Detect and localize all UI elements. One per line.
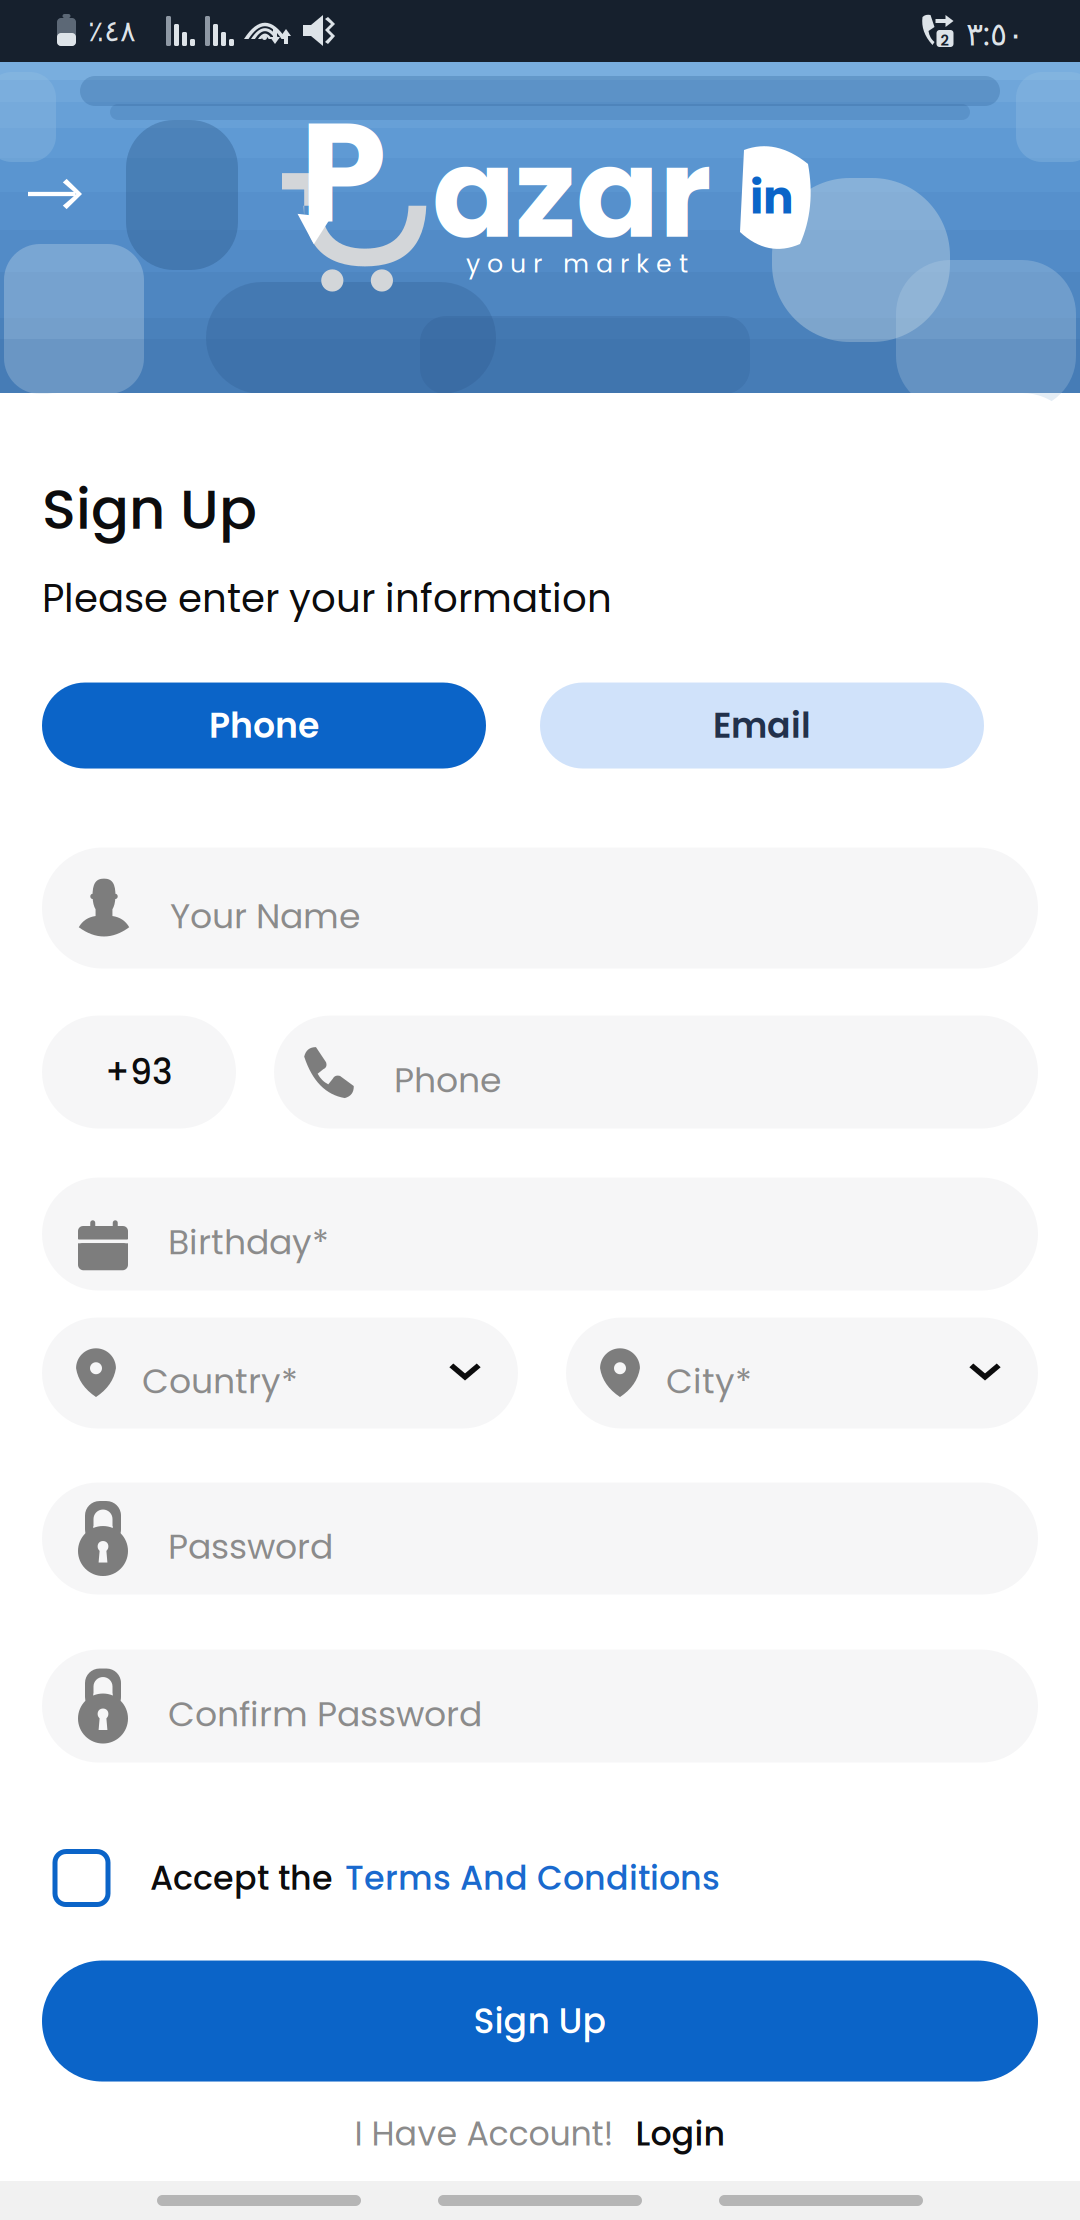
staticText: ٣:٥٠	[966, 12, 1024, 57]
button[interactable]: Accept the terms and conditions	[55, 1851, 108, 1904]
staticText: +93	[105, 1048, 173, 1096]
staticText: Country*	[142, 1357, 298, 1405]
button[interactable]: Terms And Conditions	[345, 1855, 720, 1901]
button[interactable]: Sign Up	[42, 1960, 1038, 2081]
button[interactable]: Email	[540, 682, 984, 768]
staticText: in	[750, 166, 794, 229]
staticText: Password	[168, 1522, 333, 1571]
staticText: azar	[432, 108, 712, 280]
staticText: Your Name	[170, 892, 360, 940]
staticText: 2	[940, 30, 948, 50]
staticText: Phone	[209, 701, 319, 750]
staticText: y o u r m a r k e t	[466, 246, 688, 281]
staticText: Confirm Password	[168, 1690, 482, 1738]
staticText: Sign Up	[42, 470, 257, 548]
staticText: I Have Account!	[354, 2110, 613, 2157]
staticText: Accept the	[150, 1855, 333, 1901]
staticText: Terms And Conditions	[345, 1855, 720, 1901]
staticText: Email	[713, 701, 811, 750]
staticText: ٪٤٨	[88, 14, 136, 48]
staticText: Birthday*	[168, 1218, 329, 1266]
button[interactable]: Phone	[42, 682, 486, 768]
staticText: Sign Up	[473, 1997, 606, 2045]
staticText: P	[300, 76, 387, 270]
staticText: Login	[635, 2110, 725, 2157]
button[interactable]: Login	[635, 2110, 725, 2157]
staticText: City*	[666, 1357, 752, 1405]
staticText: Phone	[394, 1056, 501, 1104]
button[interactable]: Continue	[0, 146, 110, 242]
staticText: Please enter your information	[42, 571, 612, 625]
